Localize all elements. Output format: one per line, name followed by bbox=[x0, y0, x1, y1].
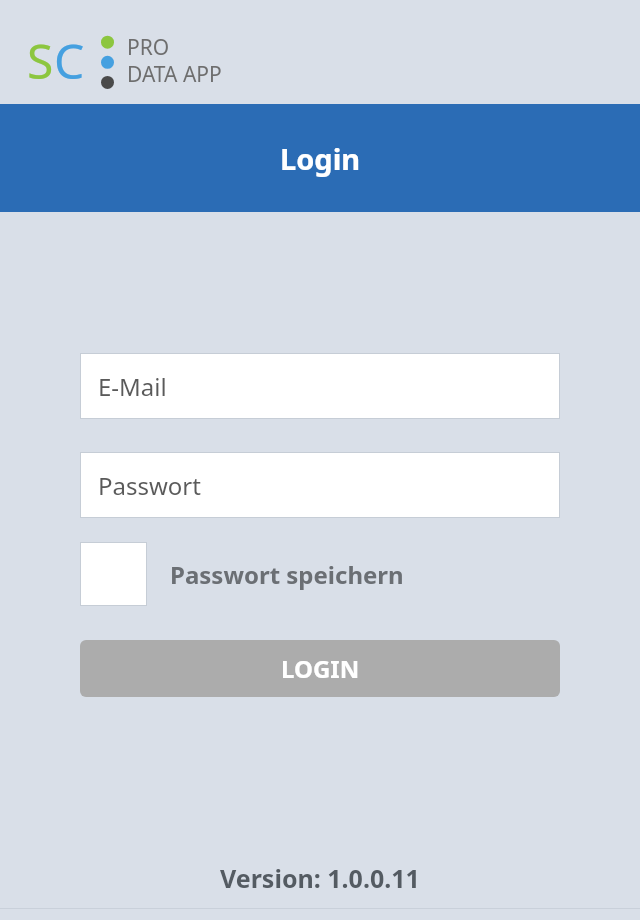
staticText: PRO bbox=[127, 33, 170, 62]
staticText: Login bbox=[280, 139, 361, 178]
staticText: S bbox=[27, 28, 54, 93]
staticText: DATA APP bbox=[127, 60, 222, 89]
staticText: C bbox=[54, 28, 85, 93]
staticText: Passwort speichern bbox=[170, 558, 404, 591]
staticText: Version: 1.0.0.11 bbox=[220, 861, 420, 895]
button[interactable]: LOGIN bbox=[80, 640, 560, 697]
button[interactable]: Passwort bbox=[80, 452, 560, 518]
staticText: E-Mail bbox=[98, 370, 167, 403]
staticText: LOGIN bbox=[281, 652, 360, 685]
button[interactable]: Passwort speichern bbox=[80, 542, 404, 606]
staticText: Passwort bbox=[98, 469, 201, 502]
button[interactable]: E-Mail bbox=[80, 353, 560, 419]
